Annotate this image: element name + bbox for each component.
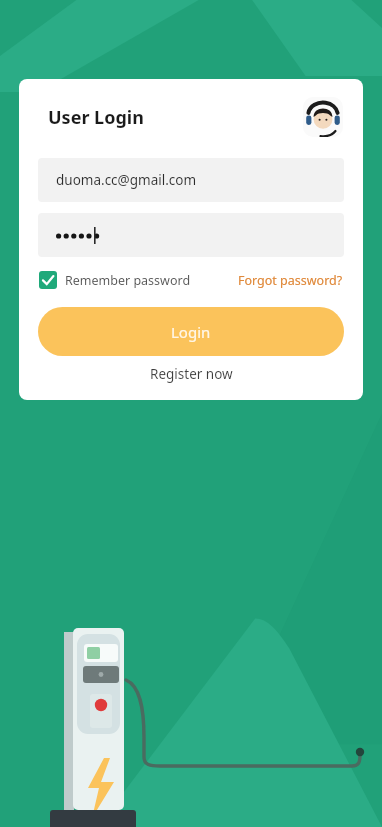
- staticText: Forgot password?: [238, 272, 343, 289]
- button[interactable]: Register now: [19, 365, 363, 383]
- button[interactable]: duoma.cc@gmail.com: [38, 158, 344, 202]
- staticText: Register now: [150, 365, 233, 383]
- button[interactable]: Remember password: [39, 271, 191, 289]
- button[interactable]: [38, 213, 344, 257]
- staticText: User Login: [48, 105, 303, 130]
- button[interactable]: Login: [38, 307, 344, 356]
- button[interactable]: Forgot password?: [238, 272, 343, 289]
- staticText: Remember password: [65, 272, 191, 289]
- button[interactable]: Support agent: [303, 97, 343, 137]
- staticText: duoma.cc@gmail.com: [56, 171, 197, 189]
- staticText: Login: [171, 322, 211, 342]
